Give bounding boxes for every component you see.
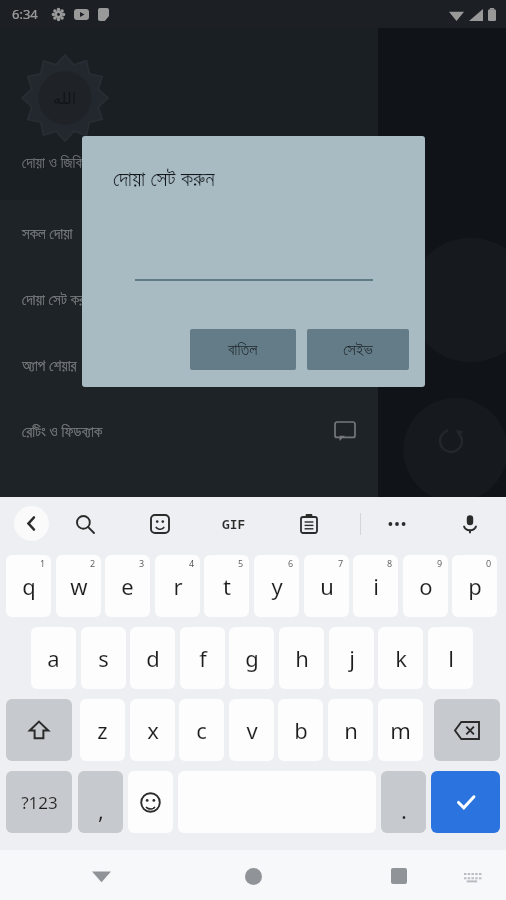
staticText: k: [395, 643, 407, 673]
staticText: সকল দোয়া: [22, 223, 334, 243]
button[interactable]: w: [56, 555, 101, 617]
staticText: 5: [238, 557, 244, 569]
button[interactable]: Clipboard: [291, 506, 326, 541]
staticText: q: [22, 571, 36, 601]
staticText: সেইভ: [343, 342, 373, 358]
staticText: দোয়া সেট করুন: [22, 289, 334, 309]
button[interactable]: j: [329, 627, 374, 689]
staticText: p: [468, 571, 482, 601]
button[interactable]: s: [81, 627, 126, 689]
staticText: e: [121, 571, 134, 601]
staticText: 3: [139, 557, 145, 569]
staticText: ,: [98, 795, 104, 825]
button[interactable]: রেটিং ও ফিডব্যাক: [0, 398, 378, 464]
button[interactable]: সকল দোয়া: [0, 200, 378, 266]
staticText: الله: [53, 89, 77, 108]
button[interactable]: g: [229, 627, 274, 689]
button[interactable]: Switch keyboard: [461, 867, 483, 889]
button[interactable]: Stickers: [142, 506, 177, 541]
staticText: 6:34: [12, 5, 38, 23]
staticText: w: [70, 571, 88, 601]
button[interactable]: u: [304, 555, 349, 617]
button[interactable]: ?123: [6, 771, 72, 833]
button[interactable]: t: [204, 555, 249, 617]
staticText: f: [199, 643, 207, 673]
staticText: ?123: [21, 791, 58, 814]
staticText: u: [320, 571, 334, 601]
button[interactable]: i: [353, 555, 398, 617]
staticText: .: [401, 795, 407, 825]
button[interactable]: m: [378, 699, 423, 761]
button[interactable]: Voice input: [452, 506, 487, 541]
staticText: 7: [338, 557, 344, 569]
button[interactable]: e: [105, 555, 150, 617]
staticText: z: [97, 715, 108, 745]
button[interactable]: সেইভ: [307, 329, 409, 370]
staticText: রেটিং ও ফিডব্যাক: [22, 421, 334, 441]
staticText: y: [271, 571, 283, 601]
staticText: 2: [90, 557, 96, 569]
staticText: 9: [437, 557, 443, 569]
button[interactable]: Search: [67, 506, 102, 541]
button[interactable]: c: [179, 699, 224, 761]
staticText: GIF: [222, 515, 246, 533]
staticText: h: [295, 643, 309, 673]
button[interactable]: z: [80, 699, 125, 761]
staticText: r: [173, 571, 183, 601]
staticText: 0: [486, 557, 492, 569]
button[interactable]: r: [155, 555, 200, 617]
staticText: o: [419, 571, 433, 601]
staticText: t: [223, 571, 231, 601]
staticText: x: [147, 715, 159, 745]
button[interactable]: Backspace: [434, 699, 500, 761]
button[interactable]: Recent apps: [386, 863, 412, 889]
staticText: a: [47, 643, 60, 673]
staticText: j: [349, 643, 355, 673]
staticText: n: [344, 715, 358, 745]
button[interactable]: l: [428, 627, 473, 689]
button[interactable]: o: [403, 555, 448, 617]
button[interactable]: বাতিল: [190, 329, 296, 370]
button[interactable]: Enter: [431, 771, 500, 833]
button[interactable]: p: [452, 555, 497, 617]
staticText: i: [373, 571, 379, 601]
staticText: 6: [288, 557, 294, 569]
staticText: g: [245, 643, 259, 673]
staticText: c: [196, 715, 207, 745]
button[interactable]: দোয়া সেট করুন: [0, 266, 378, 332]
staticText: b: [294, 715, 308, 745]
button[interactable]: a: [31, 627, 76, 689]
button[interactable]: Shift: [6, 699, 72, 761]
button[interactable]: q: [6, 555, 51, 617]
button[interactable]: Emoji: [128, 771, 173, 833]
button[interactable]: Home: [240, 863, 266, 889]
button[interactable]: অ্যাপ শেয়ার: [0, 332, 378, 398]
staticText: দোয়া সেট করুন: [113, 164, 215, 193]
button[interactable]: ,: [78, 771, 123, 833]
staticText: s: [98, 643, 109, 673]
staticText: l: [448, 643, 454, 673]
button[interactable]: GIF: [216, 506, 251, 541]
button[interactable]: k: [378, 627, 423, 689]
button[interactable]: b: [278, 699, 323, 761]
staticText: 1: [40, 557, 46, 569]
button[interactable]: x: [130, 699, 175, 761]
staticText: দোয়া ও জিকির: [22, 152, 90, 172]
button[interactable]: y: [254, 555, 299, 617]
staticText: v: [246, 715, 258, 745]
button[interactable]: .: [381, 771, 426, 833]
button[interactable]: d: [130, 627, 175, 689]
button[interactable]: More options: [379, 506, 414, 541]
button[interactable]: Back: [88, 863, 114, 889]
button[interactable]: v: [229, 699, 274, 761]
staticText: 4: [189, 557, 195, 569]
button[interactable]: h: [279, 627, 324, 689]
staticText: অ্যাপ শেয়ার: [22, 355, 334, 375]
button[interactable]: n: [328, 699, 373, 761]
button[interactable]: Back: [14, 506, 49, 541]
staticText: d: [146, 643, 160, 673]
button[interactable]: f: [180, 627, 225, 689]
staticText: m: [390, 715, 411, 745]
